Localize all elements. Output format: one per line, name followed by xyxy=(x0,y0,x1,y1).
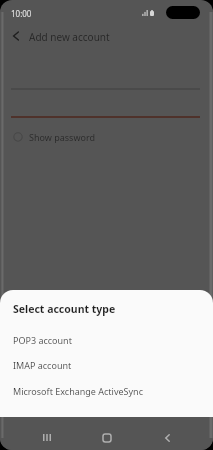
button[interactable]: Show password xyxy=(0,128,95,145)
button[interactable]: Microsoft Exchange ActiveSync xyxy=(0,378,213,403)
staticText: POP3 account xyxy=(13,334,72,346)
staticText: Select account type xyxy=(13,302,116,316)
staticText: Microsoft Exchange ActiveSync xyxy=(13,385,143,397)
button[interactable]: IMAP account xyxy=(0,352,213,377)
staticText: Add new account xyxy=(29,30,110,44)
button[interactable]: Home xyxy=(87,421,127,450)
button[interactable]: Recents xyxy=(27,421,67,450)
staticText: Show password xyxy=(29,131,95,143)
button[interactable]: Navigate up xyxy=(4,24,28,48)
button[interactable]: POP3 account xyxy=(0,327,213,352)
button[interactable]: Back xyxy=(147,421,187,450)
staticText: IMAP account xyxy=(13,359,72,371)
staticText: 10:00 xyxy=(11,8,32,19)
